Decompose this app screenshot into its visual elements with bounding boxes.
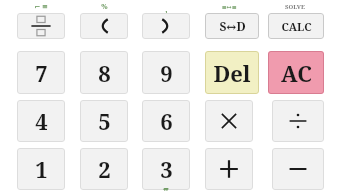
button[interactable]: Fraction bbox=[17, 13, 65, 39]
staticText: 1 bbox=[35, 154, 48, 184]
staticText: Del bbox=[213, 58, 251, 88]
button[interactable]: Six bbox=[142, 100, 190, 142]
staticText: S↔D bbox=[219, 18, 246, 34]
staticText: CALC bbox=[281, 19, 312, 34]
staticText: 8 bbox=[98, 58, 111, 88]
staticText: AC bbox=[281, 58, 312, 88]
button[interactable]: Delete bbox=[205, 51, 259, 94]
staticText: 7 bbox=[35, 58, 48, 88]
staticText: 2 bbox=[98, 154, 111, 184]
button[interactable]: Four bbox=[17, 100, 65, 142]
staticText: 5 bbox=[98, 106, 111, 136]
button[interactable]: Divide bbox=[272, 100, 324, 142]
button[interactable]: Eight bbox=[80, 51, 128, 94]
staticText: SOLVE bbox=[285, 3, 305, 11]
staticText: 4 bbox=[35, 106, 48, 136]
button[interactable]: S to D bbox=[205, 13, 259, 39]
staticText: ≡↔≡ bbox=[221, 3, 237, 10]
button[interactable]: Five bbox=[80, 100, 128, 142]
button[interactable]: Seven bbox=[17, 51, 65, 94]
staticText: ‚ bbox=[165, 3, 168, 14]
button[interactable]: Three bbox=[142, 148, 190, 190]
staticText: π bbox=[163, 184, 169, 191]
staticText: 3 bbox=[160, 154, 173, 184]
button[interactable]: Nine bbox=[142, 51, 190, 94]
staticText: 6 bbox=[160, 106, 173, 136]
button[interactable]: Plus bbox=[205, 148, 253, 190]
button[interactable]: Open parenthesis bbox=[80, 13, 128, 39]
button[interactable]: Calc bbox=[268, 13, 324, 39]
button[interactable]: One bbox=[17, 148, 65, 190]
staticText: ⌐ ≡ bbox=[34, 2, 48, 12]
staticText: 9 bbox=[160, 58, 173, 88]
staticText: % bbox=[101, 2, 108, 12]
button[interactable]: Multiply bbox=[205, 100, 253, 142]
button[interactable]: Close parenthesis bbox=[142, 13, 190, 39]
button[interactable]: All clear bbox=[268, 51, 324, 94]
button[interactable]: Two bbox=[80, 148, 128, 190]
button[interactable]: Minus bbox=[272, 148, 324, 190]
